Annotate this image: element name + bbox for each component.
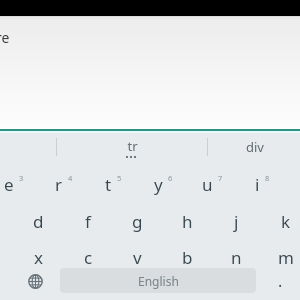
staticText: h [182, 210, 193, 233]
button[interactable]: tr [58, 133, 206, 161]
button[interactable]: Switch language [20, 267, 50, 295]
staticText: English [138, 273, 179, 289]
staticText: 4 [68, 173, 73, 183]
button[interactable]: . [266, 267, 294, 295]
button[interactable]: t [91, 166, 135, 202]
button[interactable]: d [16, 203, 60, 239]
staticText: r [55, 173, 63, 196]
button[interactable]: re [0, 28, 10, 47]
staticText: u [202, 173, 213, 196]
button[interactable]: v [115, 239, 159, 275]
staticText: e [4, 173, 14, 196]
staticText: 7 [218, 173, 223, 183]
staticText: m [278, 246, 294, 269]
staticText: v [133, 246, 142, 269]
staticText: k [281, 210, 291, 233]
staticText: x [34, 246, 43, 269]
button[interactable]: x [16, 239, 60, 275]
staticText: n [231, 246, 242, 269]
staticText: y [154, 173, 163, 196]
button[interactable]: m [264, 239, 300, 275]
button[interactable]: f [66, 203, 110, 239]
button[interactable]: r [42, 166, 86, 202]
button[interactable]: u [190, 166, 234, 202]
staticText: f [85, 210, 91, 233]
staticText: 8 [265, 173, 270, 183]
button[interactable]: i [240, 166, 284, 202]
button[interactable]: k [264, 203, 300, 239]
staticText: 6 [168, 173, 173, 183]
button[interactable]: n [214, 239, 258, 275]
button[interactable]: English [60, 268, 256, 293]
staticText: div [246, 138, 264, 156]
staticText: 3 [19, 173, 24, 183]
button[interactable]: y [141, 166, 185, 202]
staticText: . [278, 270, 283, 292]
staticText: tr [127, 137, 138, 155]
staticText: i [255, 173, 260, 196]
staticText: 5 [117, 173, 122, 183]
staticText: j [234, 210, 239, 233]
staticText: g [132, 210, 143, 233]
staticText: re [0, 28, 10, 47]
button[interactable]: j [214, 203, 258, 239]
staticText: t [105, 173, 112, 196]
staticText: c [84, 246, 93, 269]
button[interactable]: g [115, 203, 159, 239]
button[interactable]: c [66, 239, 110, 275]
button[interactable]: h [165, 203, 209, 239]
button[interactable]: b [165, 239, 209, 275]
staticText: b [182, 246, 193, 269]
button[interactable]: e [0, 166, 36, 202]
button[interactable]: div [209, 133, 300, 161]
staticText: d [33, 210, 44, 233]
